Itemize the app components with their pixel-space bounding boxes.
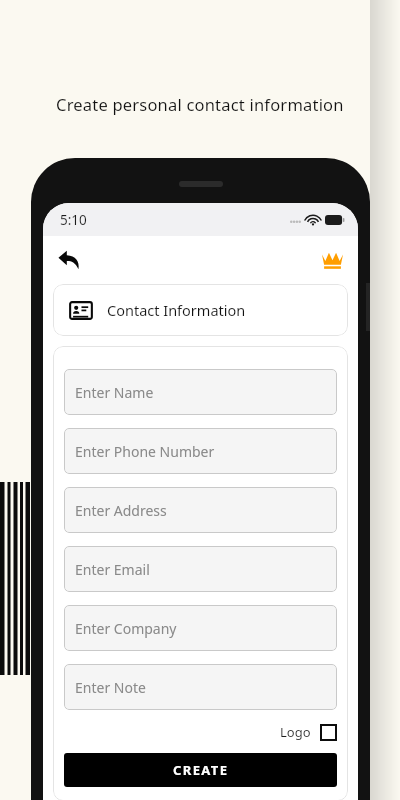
button[interactable]: Enter Note (64, 664, 337, 710)
staticText: Enter Company (75, 619, 177, 638)
button[interactable]: Enter Email (64, 546, 337, 592)
button[interactable]: Premium (316, 244, 348, 276)
button[interactable]: Back (52, 243, 86, 277)
staticText: Enter Email (75, 560, 150, 579)
staticText: Enter Note (75, 678, 146, 697)
staticText: Enter Phone Number (75, 442, 215, 461)
button[interactable]: Enter Name (64, 369, 337, 415)
button[interactable]: Enter Address (64, 487, 337, 533)
button[interactable]: CREATE (64, 753, 337, 787)
staticText: Enter Name (75, 383, 154, 402)
staticText: 5:10 (60, 211, 87, 229)
button[interactable]: Logo (64, 723, 337, 741)
staticText: Logo (280, 723, 311, 741)
staticText: Contact Information (107, 300, 246, 320)
staticText: Create personal contact information (56, 93, 344, 115)
staticText: CREATE (173, 761, 229, 779)
button[interactable]: Enter Phone Number (64, 428, 337, 474)
button[interactable]: Contact Information (53, 284, 348, 336)
staticText: Enter Address (75, 501, 167, 520)
button[interactable]: Enter Company (64, 605, 337, 651)
